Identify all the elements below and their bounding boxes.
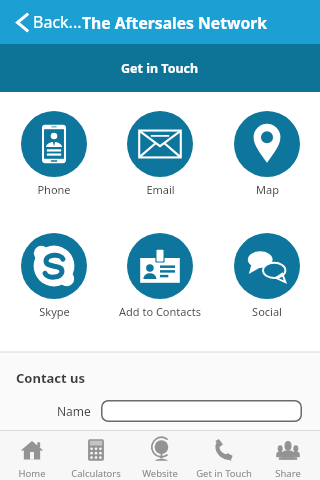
button[interactable]: Social (214, 233, 320, 319)
button[interactable]: Home (0, 431, 64, 480)
button[interactable]: Website (128, 431, 192, 480)
staticText: Map (256, 182, 279, 197)
staticText: Home (18, 467, 46, 480)
button[interactable]: Phone (1, 111, 107, 197)
staticText: Back... (33, 11, 82, 33)
button[interactable]: Add to Contacts (107, 233, 213, 319)
staticText: Contact us (16, 369, 86, 387)
staticText: Phone (37, 182, 71, 197)
staticText: Get in Touch (121, 60, 199, 77)
button[interactable]: Calculators (64, 431, 128, 480)
button[interactable]: Skype (1, 233, 107, 319)
staticText: Skype (39, 304, 70, 319)
staticText: Share (275, 467, 301, 480)
button[interactable]: Email (107, 111, 213, 197)
staticText: Website (142, 467, 178, 480)
button[interactable]: Get in Touch (0, 44, 320, 92)
button[interactable]: Get in Touch (192, 431, 256, 480)
button[interactable]: Map (214, 111, 320, 197)
button[interactable] (101, 400, 302, 422)
button[interactable]: Share (256, 431, 320, 480)
staticText: Get in Touch (196, 467, 252, 480)
staticText: Calculators (71, 467, 121, 480)
staticText: Add to Contacts (119, 304, 201, 319)
staticText: Name (57, 403, 91, 419)
staticText: Social (252, 304, 282, 319)
button[interactable]: Back... (12, 7, 86, 37)
staticText: Email (146, 182, 175, 197)
staticText: The Aftersales Network (82, 12, 267, 33)
